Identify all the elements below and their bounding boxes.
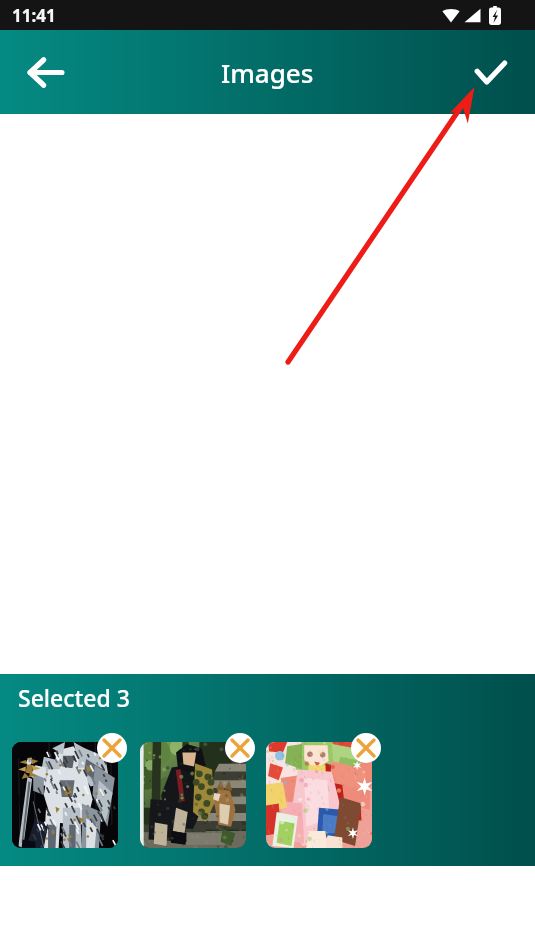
button[interactable]: Back: [25, 52, 65, 92]
button[interactable]: Remove image 3: [351, 733, 381, 763]
button[interactable]: Remove image 2: [225, 733, 255, 763]
staticText: Selected 3: [18, 682, 130, 713]
button[interactable]: Selected image 3: [266, 742, 372, 848]
button[interactable]: Confirm selection: [468, 50, 512, 94]
staticText: Images: [221, 55, 314, 90]
button[interactable]: Selected image 1: [12, 742, 118, 848]
staticText: 11:41: [12, 4, 56, 27]
button[interactable]: Remove image 1: [97, 733, 127, 763]
button[interactable]: Selected image 2: [140, 742, 246, 848]
